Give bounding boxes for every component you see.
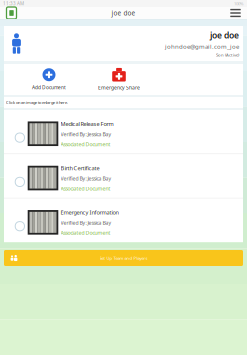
staticText: joe doe [111,9,135,17]
staticText: Associated Document [60,185,110,192]
staticText: 100% [234,1,244,6]
staticText: Birth Certificate [60,164,99,172]
button[interactable]: Emergency Share [84,64,154,95]
staticText: Emergency Share [98,84,140,91]
staticText: Add Document [32,84,66,91]
staticText: Emergency Information [60,208,118,216]
button[interactable]: Emergency Information [4,199,243,242]
staticText: Click on an image to enlarge it here. [6,100,68,105]
staticText: Medical Release Form [60,120,113,127]
staticText: johndoe@gmail.com_joe [165,42,239,50]
button[interactable]: Birth Certificate [4,154,243,198]
staticText: joe doe [210,29,239,41]
staticText: Verified By: Jessica Bay [60,219,111,226]
staticText: Associated Document [60,141,110,148]
button[interactable]: Set Up Team and Players [4,250,243,266]
button[interactable]: Add Document [14,64,84,95]
button[interactable]: Documents [5,6,18,19]
staticText: 11:33 AM [3,0,24,7]
staticText: Verified By: Jessica Bay [60,175,111,182]
button[interactable]: Menu [229,8,242,17]
staticText: Set Up Team and Players [99,255,147,261]
staticText: Son (Active) [216,52,239,58]
staticText: Associated Document [60,229,110,236]
staticText: Verified By: Jessica Bay [60,131,111,138]
button[interactable]: Medical Release Form [4,110,243,153]
